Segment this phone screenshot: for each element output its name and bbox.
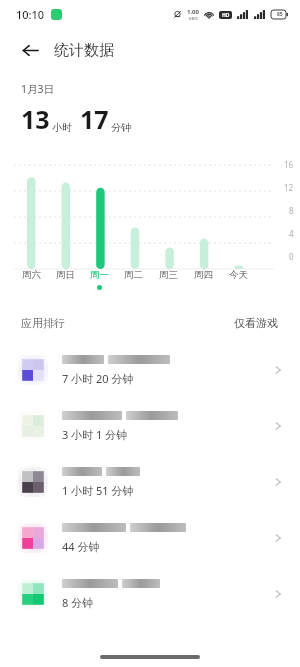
- staticText: 85: [277, 11, 283, 18]
- staticText: 分钟: [111, 121, 131, 134]
- staticText: 仅看游戏: [234, 316, 278, 330]
- button[interactable]: 仅看游戏: [230, 312, 282, 334]
- staticText: 周二: [124, 269, 143, 281]
- button[interactable]: 1 小时 51 分钟: [0, 454, 300, 510]
- staticText: 小时: [52, 121, 72, 134]
- button[interactable]: 44 分钟: [0, 510, 300, 566]
- staticText: HD: [222, 12, 230, 19]
- button[interactable]: 周六: [14, 269, 48, 290]
- staticText: 16: [284, 159, 294, 170]
- staticText: 8 分钟: [62, 595, 94, 610]
- staticText: 1 小时 51 分钟: [62, 483, 134, 498]
- staticText: 13: [21, 102, 50, 136]
- staticText: 7 小时 20 分钟: [62, 371, 134, 386]
- staticText: 周六: [22, 269, 41, 281]
- button[interactable]: Back: [14, 34, 46, 66]
- staticText: 8: [289, 205, 294, 216]
- staticText: 12: [284, 182, 294, 193]
- staticText: 0: [289, 251, 294, 262]
- staticText: 44 分钟: [62, 539, 100, 554]
- button[interactable]: 8 分钟: [0, 566, 300, 622]
- staticText: 周一: [90, 269, 109, 281]
- button[interactable]: 周一: [82, 269, 116, 290]
- staticText: 周日: [56, 269, 75, 281]
- staticText: 应用排行: [21, 316, 65, 330]
- staticText: 1月3日: [21, 82, 55, 96]
- button[interactable]: 3 小时 1 分钟: [0, 398, 300, 454]
- button[interactable]: 7 小时 20 分钟: [0, 342, 300, 398]
- staticText: 4: [289, 228, 294, 239]
- button[interactable]: 周二: [116, 269, 151, 290]
- staticText: 10:10: [16, 7, 45, 22]
- button[interactable]: 周三: [151, 269, 186, 290]
- staticText: 统计数据: [54, 41, 114, 60]
- staticText: 今天: [229, 269, 248, 281]
- staticText: 17: [80, 102, 109, 136]
- staticText: 1.00: [187, 8, 199, 16]
- staticText: 周四: [194, 269, 213, 281]
- staticText: 周三: [159, 269, 178, 281]
- staticText: KB/S: [189, 16, 198, 21]
- staticText: 3 小时 1 分钟: [62, 427, 128, 442]
- button[interactable]: 周四: [186, 269, 221, 290]
- button[interactable]: 周日: [48, 269, 82, 290]
- button[interactable]: 今天: [221, 269, 256, 290]
